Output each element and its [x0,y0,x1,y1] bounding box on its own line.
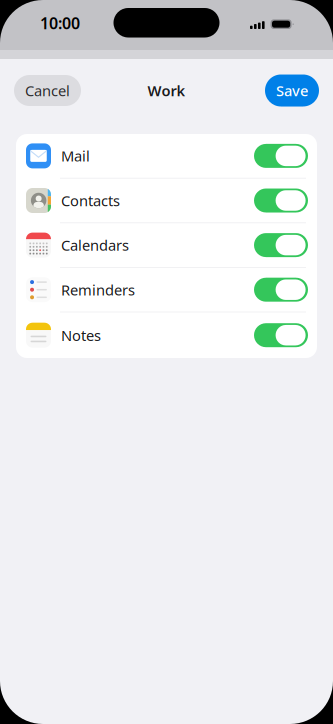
staticText: Work [147,81,185,100]
staticText: 10:00 [40,12,80,34]
staticText: Cancel [25,81,70,100]
button[interactable]: Cancel [14,75,81,106]
staticText: Calendars [61,235,129,255]
button[interactable]: Mail [16,134,317,179]
staticText: Reminders [61,280,135,299]
staticText: Save [276,81,308,100]
button[interactable]: Calendars [16,223,317,268]
staticText: Contacts [61,191,120,210]
button[interactable]: Contacts [16,179,317,223]
staticText: Mail [61,146,90,166]
button[interactable]: Notes [16,312,317,358]
button[interactable]: Reminders [16,268,317,312]
button[interactable]: Save [265,74,319,106]
staticText: Notes [61,325,101,345]
